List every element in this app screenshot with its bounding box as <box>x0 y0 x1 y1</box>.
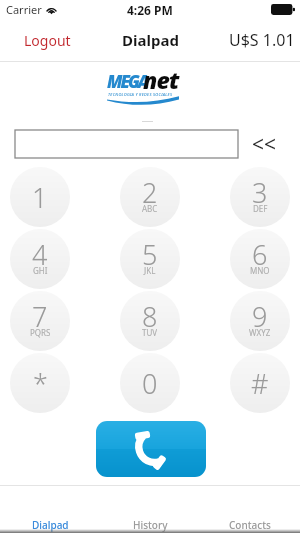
button[interactable]: 6 <box>230 229 290 289</box>
staticText: DEF <box>253 203 268 214</box>
button[interactable]: 0 <box>120 353 180 413</box>
staticText: # <box>251 365 269 402</box>
button[interactable]: 8 <box>120 291 180 351</box>
staticText: GHI <box>33 265 48 276</box>
staticText: net <box>143 64 179 95</box>
staticText: 4:26 PM <box>127 2 173 18</box>
staticText: 8 <box>142 298 158 335</box>
staticText: JKL <box>144 265 156 276</box>
button[interactable]: 3 <box>230 167 290 227</box>
staticText: Carrier <box>6 2 42 17</box>
button[interactable]: Dialpad <box>0 486 100 533</box>
staticText: 0 <box>142 365 158 402</box>
button[interactable]: 2 <box>120 167 180 227</box>
staticText: 6 <box>252 236 268 273</box>
staticText: 5 <box>142 236 158 273</box>
staticText: Dialpad <box>32 518 69 532</box>
button[interactable]: Call <box>96 421 206 477</box>
button[interactable]: History <box>100 486 200 533</box>
staticText: Logout <box>24 31 71 50</box>
button[interactable]: # <box>230 353 290 413</box>
staticText: PQRS <box>30 327 51 338</box>
staticText: WXYZ <box>249 327 271 338</box>
staticText: TUV <box>142 327 158 338</box>
button[interactable]: 9 <box>230 291 290 351</box>
button[interactable]: 7 <box>10 291 70 351</box>
staticText: TECNOLOGIA Y REDES SOCIALES <box>108 92 173 97</box>
button[interactable] <box>15 130 238 158</box>
staticText: ABC <box>142 203 158 214</box>
button[interactable]: 4 <box>10 229 70 289</box>
staticText: MEGA <box>107 70 148 93</box>
staticText: U$S 1.01 <box>229 29 295 51</box>
staticText: Contacts <box>229 518 271 532</box>
staticText: 3 <box>252 174 268 211</box>
staticText: * <box>33 365 48 402</box>
button[interactable]: Backspace <box>252 130 292 158</box>
staticText: 2 <box>142 174 158 211</box>
staticText: Dialpad <box>122 30 179 50</box>
staticText: << <box>252 130 277 158</box>
button[interactable]: * <box>10 353 70 413</box>
button[interactable]: U$S 1.01 <box>219 20 300 60</box>
staticText: History <box>133 518 168 532</box>
staticText: 4 <box>32 236 48 273</box>
button[interactable]: 5 <box>120 229 180 289</box>
button[interactable]: 1 <box>10 167 70 227</box>
button[interactable]: Logout <box>0 22 85 59</box>
staticText: 1 <box>32 179 48 216</box>
staticText: 7 <box>32 298 48 335</box>
staticText: MNO <box>250 265 270 276</box>
button[interactable]: Contacts <box>200 486 300 533</box>
staticText: 9 <box>252 298 268 335</box>
